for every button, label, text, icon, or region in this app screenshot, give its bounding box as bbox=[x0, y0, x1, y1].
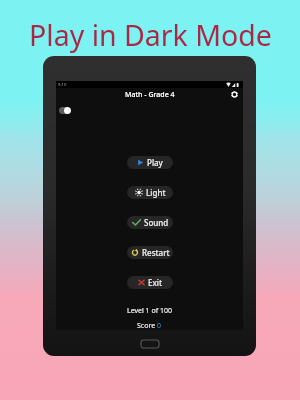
staticText: Level 1 of 100 bbox=[127, 306, 172, 316]
button[interactable]: Restart bbox=[127, 246, 173, 259]
staticText: Math - Grade 4 bbox=[125, 90, 175, 100]
staticText: Play in Dark Mode bbox=[29, 16, 272, 55]
button[interactable]: Dark mode toggle bbox=[59, 107, 71, 114]
staticText: Score bbox=[137, 321, 157, 331]
button[interactable]: Home bbox=[141, 340, 159, 348]
button[interactable]: Settings bbox=[229, 89, 240, 100]
button[interactable]: Exit bbox=[127, 276, 173, 289]
staticText: Restart bbox=[142, 247, 170, 258]
button[interactable]: Light bbox=[127, 186, 173, 199]
staticText: Exit bbox=[148, 277, 163, 288]
staticText: 9:10 bbox=[58, 82, 67, 88]
staticText: Light bbox=[146, 187, 166, 198]
staticText: 0 bbox=[157, 321, 162, 331]
staticText: Sound bbox=[144, 217, 169, 228]
button[interactable]: Play bbox=[127, 156, 173, 169]
button[interactable]: Sound bbox=[127, 216, 173, 229]
staticText: Play bbox=[147, 157, 163, 168]
